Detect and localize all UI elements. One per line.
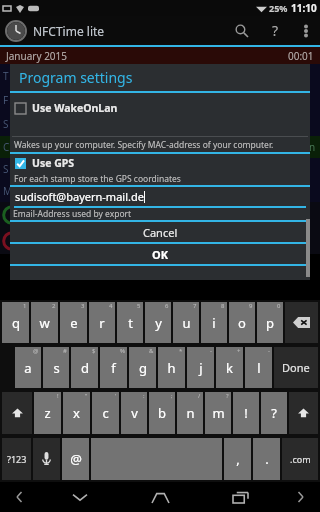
button[interactable]: &	[129, 347, 156, 388]
button[interactable]: "	[63, 392, 90, 434]
staticText: M	[3, 184, 13, 198]
button[interactable]: $	[71, 347, 98, 388]
button[interactable]: ?	[261, 392, 287, 434]
button[interactable]: 1	[2, 302, 29, 343]
staticText: !	[244, 404, 248, 422]
button[interactable]: More options	[292, 16, 320, 45]
button[interactable]: 5	[117, 302, 143, 343]
button[interactable]: OK	[10, 244, 310, 264]
staticText: -	[210, 347, 212, 355]
button[interactable]: @	[62, 438, 89, 480]
button[interactable]: Search	[224, 16, 258, 45]
button[interactable]: Help	[258, 16, 292, 45]
staticText: y	[155, 314, 162, 332]
staticText: +	[237, 347, 241, 355]
button[interactable]: *	[158, 347, 185, 388]
staticText: d	[81, 359, 89, 377]
button[interactable]: -	[187, 347, 214, 388]
button[interactable]: :	[121, 392, 147, 434]
staticText: e	[70, 314, 78, 332]
staticText: T	[3, 69, 9, 83]
button[interactable]: 7	[173, 302, 199, 343]
button[interactable]: Hide keyboard	[40, 482, 120, 512]
button[interactable]: Use GPS	[10, 154, 310, 172]
button[interactable]: '	[92, 392, 119, 434]
button[interactable]: Shift	[2, 392, 32, 434]
staticText: u	[182, 314, 191, 332]
staticText: OK	[152, 247, 169, 262]
button[interactable]: -	[245, 347, 272, 388]
staticText: :	[143, 392, 145, 400]
staticText: sudisoft@bayern-mail.de	[15, 189, 144, 204]
staticText: 8	[221, 302, 225, 310]
staticText: Done	[282, 360, 310, 375]
button[interactable]: 6	[145, 302, 171, 343]
staticText: 0	[277, 302, 281, 310]
staticText: w	[39, 314, 50, 332]
button[interactable]: 8	[201, 302, 227, 343]
staticText: @	[33, 347, 39, 355]
button[interactable]: .com	[282, 438, 318, 480]
button[interactable]: #	[43, 347, 69, 388]
staticText: January 2015	[6, 49, 68, 63]
staticText: Use GPS	[32, 156, 75, 170]
button[interactable]: 9	[229, 302, 255, 343]
staticText: *	[179, 347, 183, 355]
staticText: 6	[165, 302, 169, 310]
staticText: g	[139, 359, 147, 377]
button[interactable]: Shift	[289, 392, 318, 434]
button[interactable]: 4	[89, 302, 115, 343]
staticText: z	[44, 404, 51, 422]
staticText: i	[212, 314, 216, 332]
button[interactable]: /	[177, 392, 203, 434]
staticText: "	[85, 392, 88, 400]
staticText: 2	[52, 302, 56, 310]
button[interactable]: ?123	[2, 438, 31, 480]
button[interactable]: ,	[224, 438, 251, 480]
staticText: m	[212, 404, 225, 422]
staticText: Use WakeOnLan	[32, 101, 118, 115]
button[interactable]: Recents	[200, 482, 280, 512]
staticText: NFCTime lite	[33, 23, 105, 39]
button[interactable]: %	[100, 347, 127, 388]
button[interactable]: Use WakeOnLan	[10, 93, 310, 123]
button[interactable]: 0	[257, 302, 283, 343]
button[interactable]: .	[253, 438, 280, 480]
staticText: h	[167, 359, 176, 377]
staticText: 7	[193, 302, 197, 310]
staticText: ,	[236, 450, 240, 468]
staticText: p	[266, 314, 274, 332]
staticText: 1	[23, 302, 27, 310]
button[interactable]: Cancel	[10, 222, 310, 242]
button[interactable]: Previous	[0, 482, 40, 512]
staticText: b	[158, 404, 166, 422]
staticText: o	[238, 314, 246, 332]
button[interactable]: !	[233, 392, 259, 434]
button[interactable]: Next	[280, 482, 320, 512]
button[interactable]: Backspace	[285, 302, 318, 343]
staticText: Wakes up your computer. Specify MAC-addr…	[14, 139, 274, 151]
staticText: Cancel	[143, 225, 178, 240]
staticText: !	[57, 392, 59, 400]
button[interactable]: ;	[149, 392, 175, 434]
button[interactable]: +	[216, 347, 243, 388]
staticText: @	[70, 450, 82, 468]
button[interactable]: ?	[205, 392, 231, 434]
staticText: 9	[249, 302, 253, 310]
staticText: /	[198, 392, 201, 400]
staticText: S	[3, 117, 9, 131]
staticText: t	[128, 314, 133, 332]
staticText: F	[3, 93, 9, 107]
button[interactable]: Voice input	[33, 438, 60, 480]
button[interactable]: 2	[31, 302, 58, 343]
staticText: %	[120, 347, 125, 355]
button[interactable]: 3	[60, 302, 87, 343]
staticText: 4	[109, 302, 113, 310]
staticText: 3	[81, 302, 85, 310]
button[interactable]: @	[15, 347, 41, 388]
button[interactable]: Done	[274, 347, 318, 388]
staticText: S	[3, 162, 9, 176]
button[interactable]: !	[34, 392, 61, 434]
button[interactable]: Home	[120, 482, 200, 512]
